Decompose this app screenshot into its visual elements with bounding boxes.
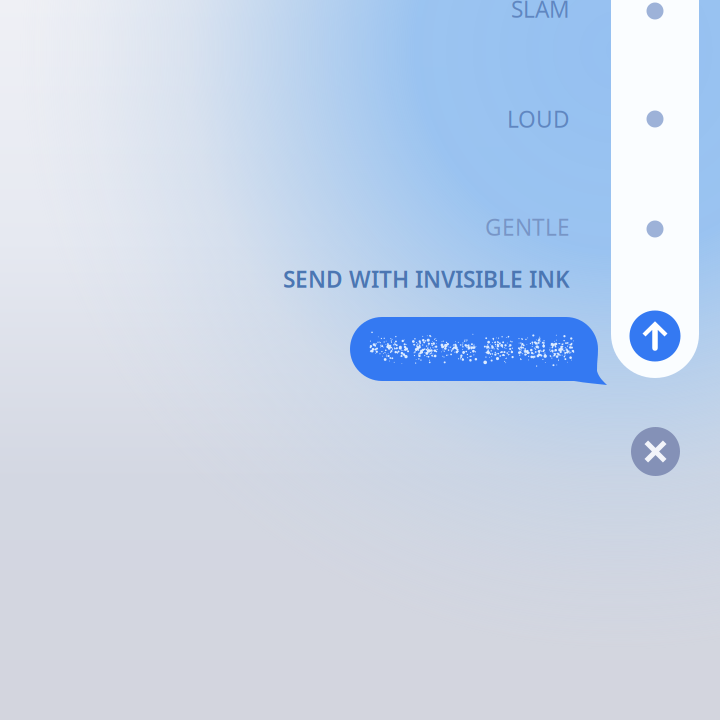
staticText: SLAM bbox=[511, 0, 570, 24]
button[interactable]: Close bbox=[631, 427, 680, 476]
staticText: SEND WITH INVISIBLE INK bbox=[283, 264, 570, 294]
button[interactable]: Slam bbox=[611, 0, 699, 28]
button[interactable]: SLAM bbox=[0, 0, 570, 24]
staticText: GENTLE bbox=[485, 212, 570, 242]
button[interactable]: LOUD bbox=[0, 104, 570, 134]
button[interactable]: Gentle bbox=[611, 212, 699, 246]
button[interactable]: Loud bbox=[611, 102, 699, 136]
button[interactable]: Send bbox=[611, 303, 699, 369]
button[interactable]: GENTLE bbox=[0, 212, 570, 242]
staticText: LOUD bbox=[507, 104, 570, 134]
button[interactable]: SEND WITH INVISIBLE INK bbox=[0, 264, 570, 294]
